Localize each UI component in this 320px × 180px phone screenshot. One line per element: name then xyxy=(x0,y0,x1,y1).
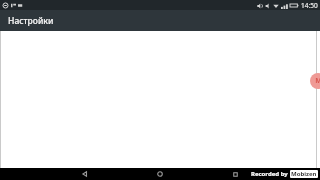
button[interactable]: Recent apps xyxy=(224,168,246,180)
staticText: Mobizen xyxy=(291,170,317,178)
staticText: M xyxy=(315,76,320,86)
button[interactable]: Home xyxy=(149,168,171,180)
button[interactable]: Настройки xyxy=(0,10,320,31)
button[interactable]: Floating action xyxy=(310,73,320,89)
staticText: 14:50 xyxy=(301,1,318,10)
button[interactable]: Back xyxy=(74,168,96,180)
staticText: Настройки xyxy=(8,15,54,27)
staticText: Recorded by xyxy=(251,170,288,178)
